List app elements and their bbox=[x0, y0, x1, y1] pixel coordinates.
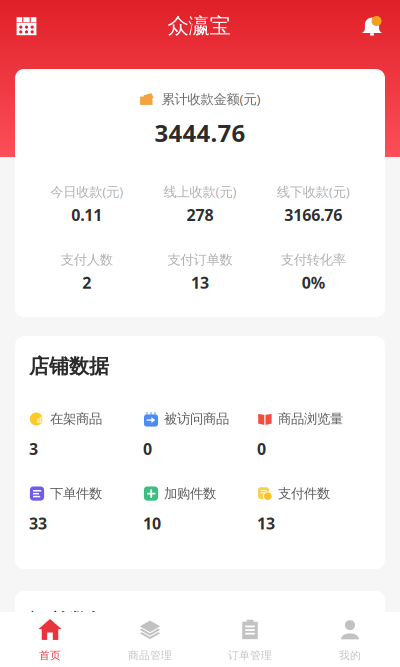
button[interactable]: 首页 bbox=[0, 615, 100, 664]
staticText: 3 bbox=[29, 438, 38, 459]
staticText: 店铺数据 bbox=[29, 354, 109, 379]
staticText: 支付件数 bbox=[278, 485, 330, 502]
button[interactable]: 商品管理 bbox=[100, 615, 200, 664]
staticText: 加购件数 bbox=[164, 485, 216, 502]
staticText: 支付人数 bbox=[61, 251, 113, 268]
button[interactable]: Calendar bbox=[0, 6, 47, 46]
staticText: 0% bbox=[302, 272, 325, 293]
staticText: 商品管理 bbox=[128, 649, 172, 662]
button[interactable]: Notifications bbox=[351, 6, 400, 46]
staticText: 0 bbox=[257, 438, 266, 459]
staticText: 278 bbox=[186, 204, 213, 225]
staticText: 被访问商品 bbox=[164, 411, 229, 427]
staticText: 累计收款金额(元) bbox=[161, 90, 260, 108]
staticText: 33 bbox=[29, 513, 47, 534]
staticText: 2 bbox=[82, 272, 91, 293]
staticText: 支付转化率 bbox=[281, 251, 346, 268]
staticText: 10 bbox=[143, 513, 161, 534]
staticText: 首页 bbox=[39, 649, 61, 662]
staticText: 3166.76 bbox=[284, 204, 342, 225]
staticText: 在架商品 bbox=[50, 411, 102, 427]
staticText: 线下收款(元) bbox=[277, 183, 350, 200]
staticText: 下单件数 bbox=[50, 485, 102, 502]
staticText: 众瀛宝 bbox=[167, 13, 230, 39]
staticText: 线上收款(元) bbox=[163, 183, 236, 200]
staticText: 今日收款(元) bbox=[50, 183, 123, 200]
staticText: 13 bbox=[191, 272, 209, 293]
staticText: 我的 bbox=[339, 649, 361, 662]
button[interactable]: 我的 bbox=[300, 615, 400, 664]
staticText: 订单管理 bbox=[228, 649, 272, 662]
button[interactable]: 订单管理 bbox=[200, 615, 300, 664]
staticText: 0.11 bbox=[71, 204, 102, 225]
staticText: 商品浏览量 bbox=[278, 411, 343, 427]
staticText: 3444.76 bbox=[154, 117, 245, 149]
staticText: 13 bbox=[257, 513, 275, 534]
staticText: 支付订单数 bbox=[167, 251, 232, 268]
staticText: 0 bbox=[143, 438, 152, 459]
staticText: 订单数据 bbox=[29, 609, 109, 634]
